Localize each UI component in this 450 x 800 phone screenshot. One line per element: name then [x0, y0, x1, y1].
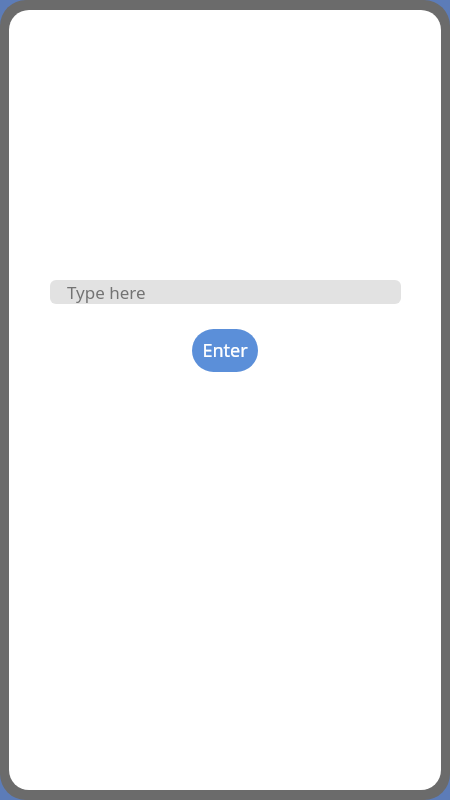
staticText: Type here [67, 281, 146, 304]
staticText: Enter [202, 338, 248, 363]
button[interactable]: Type here [50, 280, 401, 304]
button[interactable]: Enter [192, 329, 258, 372]
